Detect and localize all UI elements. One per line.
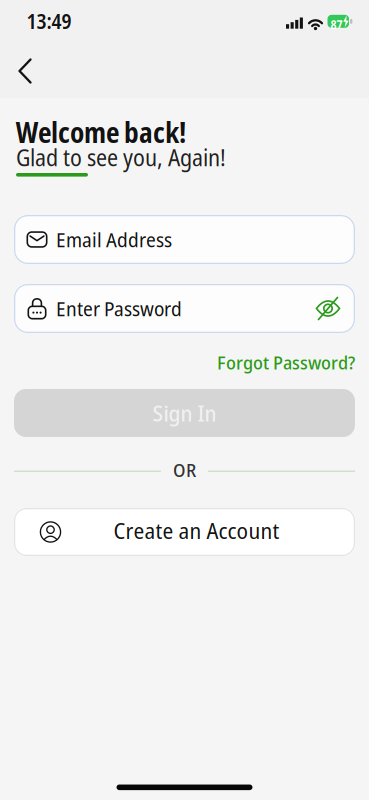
staticText: 87 [330, 16, 342, 33]
staticText: Create an Account [113, 515, 279, 545]
staticText: Enter Password [56, 295, 182, 322]
staticText: Welcome back! [16, 113, 186, 151]
staticText: Sign In [152, 398, 216, 428]
staticText: Email Address [56, 226, 172, 253]
staticText: 13:49 [26, 7, 71, 35]
staticText: Glad to see you, Again! [16, 142, 226, 173]
staticText: OR [173, 457, 196, 482]
staticText: Forgot Password? [217, 349, 355, 375]
